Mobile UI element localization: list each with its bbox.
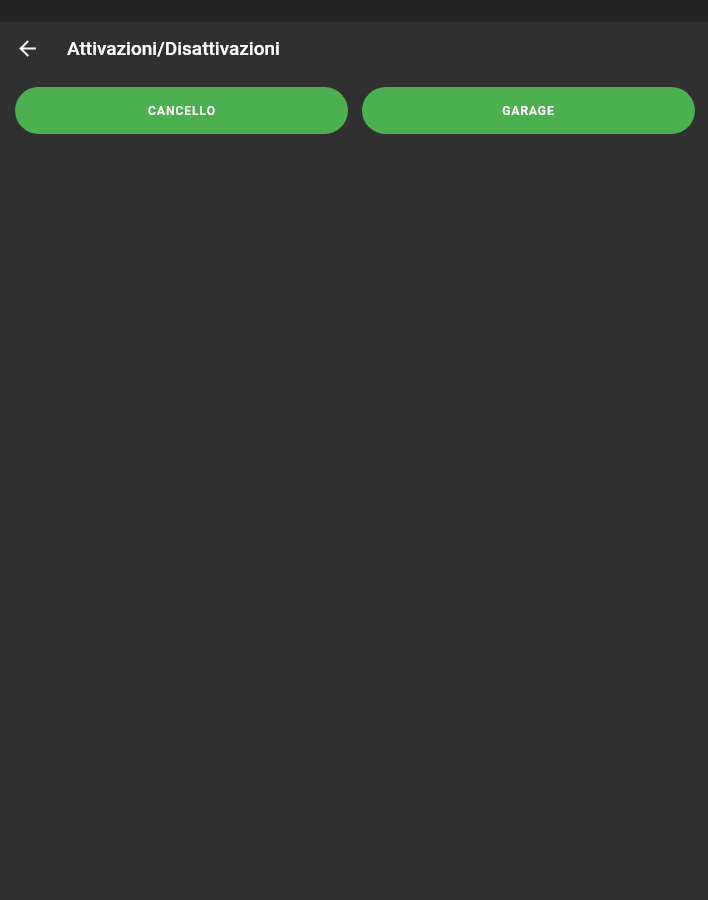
button[interactable]: CANCELLO (15, 87, 348, 134)
staticText: Attivazioni/Disattivazioni (67, 37, 280, 59)
staticText: CANCELLO (148, 104, 216, 118)
button[interactable]: Back (14, 35, 40, 61)
staticText: GARAGE (502, 104, 555, 118)
button[interactable]: GARAGE (362, 87, 695, 134)
